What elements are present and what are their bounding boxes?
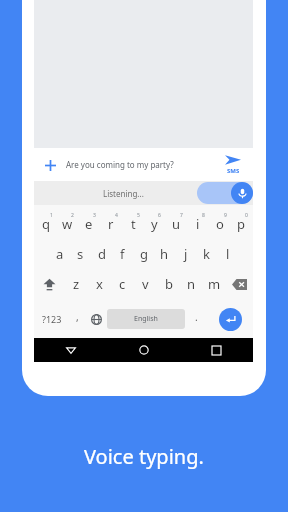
button[interactable]: Backspace [226, 269, 253, 299]
staticText: w [62, 215, 73, 233]
staticText: v [142, 275, 149, 293]
staticText: 6 [158, 212, 161, 219]
button[interactable]: 3 [79, 209, 99, 239]
button[interactable]: a [49, 239, 70, 269]
staticText: p [237, 215, 245, 233]
button[interactable]: s [70, 239, 91, 269]
button[interactable]: v [134, 269, 157, 299]
staticText: 9 [224, 212, 227, 219]
button[interactable]: 1 [36, 209, 56, 239]
button[interactable]: Change language [85, 305, 107, 333]
button[interactable]: b [157, 269, 180, 299]
button[interactable]: j [175, 239, 196, 269]
button[interactable]: . [185, 305, 207, 333]
button[interactable]: Add attachment [41, 156, 59, 174]
staticText: x [96, 275, 103, 293]
staticText: English [134, 314, 158, 324]
button[interactable]: 4 [101, 209, 121, 239]
button[interactable]: 9 [210, 209, 230, 239]
staticText: a [56, 245, 64, 263]
button[interactable]: 2 [57, 209, 77, 239]
button[interactable]: Recents [180, 338, 253, 362]
staticText: Listening... [103, 188, 144, 199]
staticText: . [195, 310, 198, 324]
staticText: 0 [245, 212, 248, 219]
staticText: d [98, 245, 106, 263]
staticText: s [77, 245, 84, 263]
button[interactable]: h [154, 239, 175, 269]
staticText: u [172, 215, 181, 233]
staticText: ?123 [42, 313, 62, 325]
button[interactable]: z [65, 269, 88, 299]
button[interactable]: n [180, 269, 203, 299]
button[interactable]: 0 [231, 209, 251, 239]
staticText: y [151, 215, 158, 233]
button[interactable]: 8 [188, 209, 208, 239]
button[interactable]: 5 [123, 209, 143, 239]
button[interactable]: l [217, 239, 238, 269]
staticText: o [216, 215, 224, 233]
button[interactable]: x [88, 269, 111, 299]
button[interactable]: f [112, 239, 133, 269]
button[interactable]: 7 [166, 209, 186, 239]
button[interactable]: Add attachment [34, 148, 253, 181]
staticText: i [196, 215, 200, 233]
staticText: 5 [137, 212, 140, 219]
staticText: Voice typing. [84, 443, 204, 470]
staticText: c [119, 275, 126, 293]
button[interactable]: ?123 [34, 305, 69, 333]
staticText: 4 [115, 212, 118, 219]
staticText: e [85, 215, 93, 233]
button[interactable]: Back [34, 338, 107, 362]
staticText: f [120, 245, 125, 263]
staticText: h [160, 245, 169, 263]
button[interactable]: Enter [219, 308, 242, 331]
button[interactable]: Shift [34, 269, 65, 299]
button[interactable]: m [203, 269, 226, 299]
staticText: 7 [180, 212, 183, 219]
staticText: g [140, 245, 148, 263]
staticText: z [73, 275, 80, 293]
staticText: 1 [50, 212, 53, 219]
staticText: k [203, 245, 210, 263]
button[interactable]: 6 [144, 209, 164, 239]
staticText: b [165, 275, 173, 293]
staticText: , [76, 310, 79, 324]
button[interactable]: k [196, 239, 217, 269]
staticText: l [226, 245, 230, 263]
staticText: Are you coming to my party? [66, 159, 174, 170]
button[interactable]: English [107, 309, 185, 329]
button[interactable]: , [69, 305, 85, 333]
button[interactable]: Voice input [231, 182, 253, 204]
button[interactable]: g [133, 239, 154, 269]
staticText: t [131, 215, 136, 233]
staticText: m [208, 275, 221, 293]
staticText: 2 [71, 212, 74, 219]
button[interactable]: Home [107, 338, 180, 362]
staticText: r [108, 215, 114, 233]
button[interactable]: d [91, 239, 112, 269]
staticText: q [42, 215, 50, 233]
staticText: SMS [227, 167, 240, 175]
staticText: j [184, 245, 188, 263]
button[interactable]: Send SMS [217, 154, 249, 175]
staticText: 3 [93, 212, 96, 219]
button[interactable]: c [111, 269, 134, 299]
staticText: 8 [202, 212, 205, 219]
staticText: n [187, 275, 196, 293]
